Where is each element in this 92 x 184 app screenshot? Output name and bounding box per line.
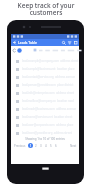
button[interactable]: 1 xyxy=(28,143,33,148)
button[interactable]: lead.reach@business.com address avenue xyxy=(11,105,79,113)
staticText: 1 xyxy=(30,144,32,148)
staticText: 4 xyxy=(45,144,47,148)
staticText: lead.name@services.net location street xyxy=(22,115,73,119)
staticText: lead.user@corporate.com address place xyxy=(22,123,74,127)
staticText: Keep track of your customers xyxy=(0,1,92,17)
button[interactable]: 6 xyxy=(53,143,58,148)
staticText: 5 xyxy=(50,144,52,148)
staticText: lead.team@provider.org address street xyxy=(22,131,72,135)
button[interactable]: lead.info@enterprise.com address street xyxy=(11,89,79,97)
staticText: Showing 1 to 10 of 100 entries xyxy=(11,137,79,141)
staticText: lead.contact@service.org address avenue xyxy=(22,75,75,79)
button[interactable]: lead.person@provider.com place district xyxy=(11,81,79,89)
button[interactable]: Back xyxy=(11,39,17,46)
button[interactable]: 4 xyxy=(43,143,48,148)
button[interactable]: Search xyxy=(60,39,66,46)
button[interactable]: lead.name@services.net location street xyxy=(11,113,79,121)
button[interactable]: Filter xyxy=(66,39,72,46)
staticText: lead.reach@business.com address avenue xyxy=(22,107,77,111)
button[interactable]: Refresh xyxy=(12,48,17,53)
button[interactable]: Previous xyxy=(13,144,27,148)
staticText: lead.example@company.com address street xyxy=(22,59,79,63)
staticText: 6 xyxy=(55,144,57,148)
button[interactable]: 3 xyxy=(38,143,43,148)
staticText: lead.person@provider.com place district xyxy=(22,83,74,87)
button[interactable]: Columns xyxy=(33,48,37,52)
button[interactable]: lead.mailbox@company.co location road xyxy=(11,97,79,105)
button[interactable]: lead.example@company.com address street xyxy=(11,57,79,65)
button[interactable]: 2 xyxy=(33,143,38,148)
staticText: Previous xyxy=(14,144,26,148)
button[interactable]: lead.user@corporate.com address place xyxy=(11,121,79,129)
button[interactable]: 5 xyxy=(48,143,53,148)
staticText: Leads Table xyxy=(18,40,37,45)
staticText: Next xyxy=(70,144,77,148)
staticText: lead.sample@business.net location place xyxy=(22,67,75,71)
button[interactable]: Profile xyxy=(17,48,22,53)
button[interactable]: lead.contact@service.org address avenue xyxy=(11,73,79,81)
staticText: 3 xyxy=(40,144,42,148)
staticText: lead.mailbox@company.co location road xyxy=(22,99,74,103)
button[interactable]: lead.team@provider.org address street xyxy=(11,129,79,137)
staticText: 2 xyxy=(35,144,37,148)
button[interactable]: Next xyxy=(70,144,77,148)
staticText: lead.info@enterprise.com address street xyxy=(22,91,74,95)
button[interactable]: More options xyxy=(72,39,78,46)
button[interactable]: lead.sample@business.net location place xyxy=(11,65,79,73)
